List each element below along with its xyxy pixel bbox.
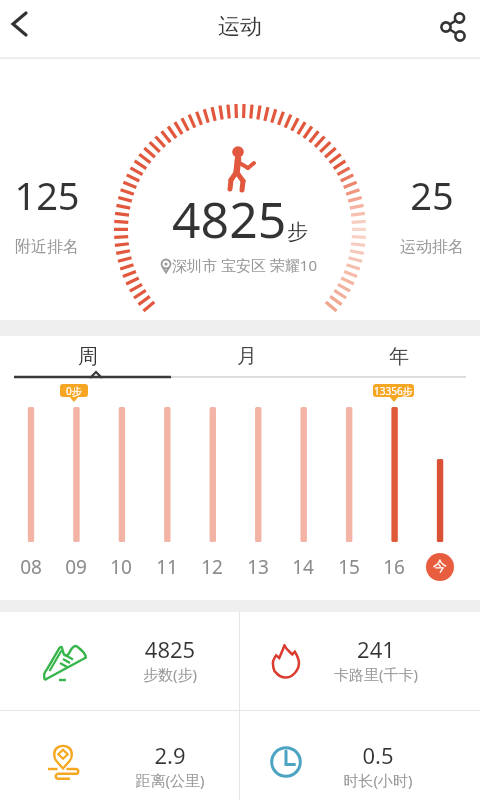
staticText: 4825 — [110, 634, 230, 664]
button[interactable] — [320, 336, 480, 376]
staticText: 13356步 — [374, 384, 413, 397]
button[interactable] — [0, 612, 240, 710]
button[interactable] — [0, 710, 240, 800]
button[interactable] — [432, 0, 480, 57]
staticText: 4825 — [172, 185, 287, 253]
staticText: 241 — [316, 634, 436, 664]
staticText: 125 — [7, 169, 87, 221]
staticText: 深圳市 宝安区 荣耀10 — [172, 255, 332, 275]
staticText: 13 — [238, 554, 278, 580]
button[interactable] — [240, 612, 480, 710]
staticText: 25 — [392, 169, 472, 221]
staticText: 15 — [329, 554, 369, 580]
staticText: 12 — [192, 554, 232, 580]
staticText: 10 — [101, 554, 141, 580]
staticText: 周 — [48, 344, 128, 369]
staticText: 09 — [56, 554, 96, 580]
staticText: 时长(小时) — [318, 770, 438, 790]
staticText: 0步 — [66, 384, 82, 397]
staticText: 年 — [359, 344, 439, 369]
staticText: 08 — [11, 554, 51, 580]
staticText: 2.9 — [110, 740, 230, 770]
staticText: 月 — [207, 344, 287, 369]
staticText: 距离(公里) — [110, 770, 230, 790]
staticText: 运动排名 — [392, 237, 472, 257]
button[interactable]: 今 — [426, 553, 454, 581]
staticText: 11 — [147, 554, 187, 580]
button[interactable] — [0, 336, 160, 376]
staticText: 运动 — [190, 13, 290, 41]
staticText: 今 — [433, 558, 447, 576]
staticText: 16 — [374, 554, 414, 580]
staticText: 步 — [287, 219, 308, 245]
staticText: 0.5 — [318, 740, 438, 770]
staticText: 14 — [283, 554, 323, 580]
button[interactable] — [0, 0, 48, 57]
staticText: 附近排名 — [7, 237, 87, 257]
staticText: 卡路里(千卡) — [316, 664, 436, 684]
button[interactable] — [160, 336, 320, 376]
staticText: 步数(步) — [110, 664, 230, 684]
button[interactable] — [240, 710, 480, 800]
